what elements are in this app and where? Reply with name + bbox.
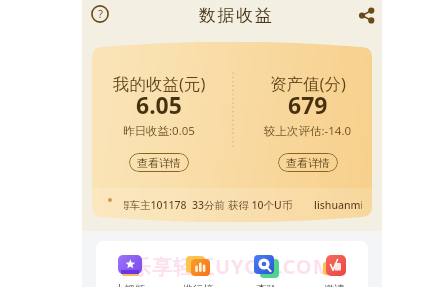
button[interactable]: Share xyxy=(350,0,382,28)
staticText: 我的收益(元) xyxy=(113,72,206,95)
button[interactable]: 查验 xyxy=(232,255,300,287)
staticText: 较上次评估:-14.0 xyxy=(264,123,352,139)
staticText: 6.05 xyxy=(136,89,182,120)
staticText: ? xyxy=(98,6,103,22)
staticText: 查验 xyxy=(256,283,277,287)
staticText: 排行榜 xyxy=(182,283,214,287)
button[interactable]: 查看详情 xyxy=(129,153,189,172)
button[interactable]: 小视频 xyxy=(96,255,164,287)
button[interactable]: 排行榜 xyxy=(164,255,232,287)
staticText: 679 xyxy=(288,89,328,120)
staticText: 查看详情 xyxy=(286,156,330,170)
staticText: 查看详情 xyxy=(137,156,181,170)
staticText: 数据收益 xyxy=(199,5,274,26)
staticText: 昨日收益:0.05 xyxy=(123,123,195,139)
staticText: 乐享轻汇UYOU.COM xyxy=(131,253,333,280)
staticText: 得车主101178 33分前 获得 10个U币 lishuanmin 车主 xyxy=(124,198,362,212)
staticText: 邀请 xyxy=(324,283,345,287)
staticText: 资产值(分) xyxy=(270,72,346,95)
button[interactable] xyxy=(92,188,372,222)
button[interactable]: 邀请 xyxy=(300,255,368,287)
button[interactable]: Help xyxy=(84,0,116,28)
staticText: 小视频 xyxy=(114,283,146,287)
button[interactable]: 查看详情 xyxy=(278,153,338,172)
